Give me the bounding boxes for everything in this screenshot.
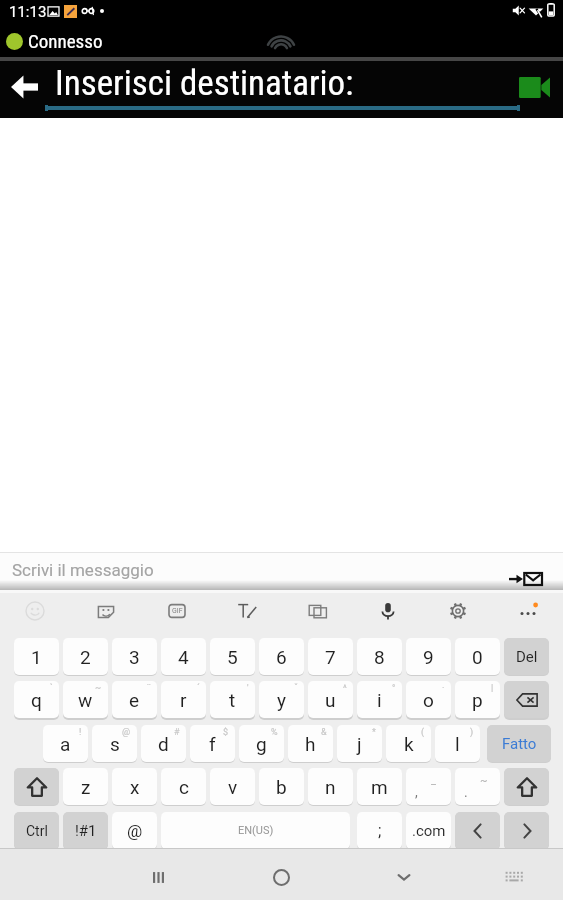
button[interactable]: Invia bbox=[503, 556, 551, 592]
staticText: 0 bbox=[472, 646, 483, 668]
button[interactable]: Indietro bbox=[0, 65, 48, 113]
button[interactable]: b bbox=[259, 768, 304, 805]
button[interactable] bbox=[455, 812, 500, 849]
staticText: ) bbox=[470, 727, 474, 738]
staticText: 11:13 bbox=[9, 3, 47, 21]
staticText: ' bbox=[247, 683, 249, 694]
button[interactable]: 8 bbox=[357, 638, 402, 675]
button[interactable]: y bbox=[259, 681, 304, 718]
button[interactable]: l bbox=[435, 725, 480, 762]
button[interactable]: 2 bbox=[63, 638, 108, 675]
button[interactable]: i bbox=[357, 681, 402, 718]
button[interactable]: Ctrl bbox=[14, 812, 59, 849]
staticText: t bbox=[229, 689, 236, 711]
staticText: ( bbox=[421, 727, 425, 738]
button[interactable]: e bbox=[112, 681, 157, 718]
staticText: · bbox=[442, 683, 445, 694]
button[interactable]: d bbox=[141, 725, 186, 762]
button[interactable]: n bbox=[308, 768, 353, 805]
staticText: ^ bbox=[343, 683, 347, 694]
button[interactable]: Del bbox=[504, 638, 549, 675]
staticText: | bbox=[491, 683, 494, 694]
staticText: 6 bbox=[276, 646, 287, 668]
button[interactable]: v bbox=[210, 768, 255, 805]
staticText: Fatto bbox=[502, 735, 537, 753]
button[interactable]: Appunti bbox=[300, 593, 336, 629]
button[interactable]: k bbox=[386, 725, 431, 762]
button[interactable]: 7 bbox=[308, 638, 353, 675]
button[interactable]: Voce bbox=[370, 593, 406, 629]
button[interactable]: f bbox=[190, 725, 235, 762]
staticText: 3 bbox=[129, 646, 140, 668]
button[interactable]: EN(US) bbox=[161, 812, 350, 849]
button[interactable]: 3 bbox=[112, 638, 157, 675]
button[interactable]: p bbox=[455, 681, 500, 718]
button[interactable] bbox=[14, 768, 59, 805]
button[interactable]: Inserisci destinatario: bbox=[45, 61, 520, 118]
staticText: 2 bbox=[80, 646, 91, 668]
button[interactable]: z bbox=[63, 768, 108, 805]
button[interactable]: j bbox=[337, 725, 382, 762]
staticText: p bbox=[472, 689, 483, 711]
button[interactable]: Chiudi tastiera bbox=[381, 854, 427, 900]
button[interactable]: Altro bbox=[510, 593, 546, 629]
staticText: .com bbox=[412, 822, 446, 840]
staticText: $ bbox=[223, 727, 229, 738]
button[interactable]: 4 bbox=[161, 638, 206, 675]
button[interactable]: , bbox=[406, 768, 451, 805]
button[interactable]: o bbox=[406, 681, 451, 718]
staticText: c bbox=[179, 776, 189, 798]
button[interactable]: w bbox=[63, 681, 108, 718]
staticText: @ bbox=[127, 821, 143, 841]
button[interactable]: . bbox=[455, 768, 500, 805]
button[interactable]: 1 bbox=[14, 638, 59, 675]
staticText: Del bbox=[516, 648, 538, 666]
button[interactable]: 0 bbox=[455, 638, 500, 675]
button[interactable]: u bbox=[308, 681, 353, 718]
button[interactable]: Emoji bbox=[17, 593, 53, 629]
button[interactable] bbox=[504, 768, 549, 805]
staticText: 8 bbox=[374, 646, 385, 668]
button[interactable]: ; bbox=[357, 812, 402, 849]
button[interactable]: Home bbox=[258, 854, 304, 900]
staticText: l bbox=[455, 733, 460, 755]
button[interactable] bbox=[504, 681, 549, 718]
button[interactable]: App recenti bbox=[135, 854, 181, 900]
button[interactable]: 5 bbox=[210, 638, 255, 675]
staticText: w bbox=[78, 689, 93, 711]
button[interactable]: a bbox=[43, 725, 88, 762]
button[interactable]: Impostazioni bbox=[440, 593, 476, 629]
button[interactable]: 6 bbox=[259, 638, 304, 675]
staticText: ~ bbox=[95, 683, 102, 694]
staticText: 5 bbox=[227, 646, 238, 668]
button[interactable]: c bbox=[161, 768, 206, 805]
button[interactable]: .com bbox=[406, 812, 451, 849]
button[interactable]: 9 bbox=[406, 638, 451, 675]
button[interactable]: @ bbox=[112, 812, 157, 849]
button[interactable]: m bbox=[357, 768, 402, 805]
button[interactable]: Fatto bbox=[487, 725, 551, 762]
staticText: & bbox=[321, 727, 327, 738]
button[interactable]: Sticker bbox=[88, 593, 124, 629]
button[interactable]: g bbox=[239, 725, 284, 762]
button[interactable]: q bbox=[14, 681, 59, 718]
button[interactable]: Tastiera bbox=[491, 854, 537, 900]
button[interactable]: h bbox=[288, 725, 333, 762]
staticText: ` bbox=[50, 683, 53, 694]
button[interactable]: GIF bbox=[159, 593, 195, 629]
staticText: k bbox=[404, 733, 414, 755]
button[interactable]: x bbox=[112, 768, 157, 805]
staticText: y bbox=[277, 689, 286, 711]
button[interactable]: t bbox=[210, 681, 255, 718]
button[interactable]: r bbox=[161, 681, 206, 718]
button[interactable] bbox=[504, 812, 549, 849]
button[interactable]: !#1 bbox=[63, 812, 108, 849]
staticText: @ bbox=[122, 727, 131, 738]
staticText: x bbox=[130, 776, 140, 798]
staticText: v bbox=[228, 776, 238, 798]
staticText: ¨ bbox=[147, 683, 151, 694]
button[interactable]: Videochiamata bbox=[508, 61, 558, 118]
staticText: ° bbox=[392, 683, 396, 694]
button[interactable]: s bbox=[92, 725, 137, 762]
button[interactable]: Scrittura bbox=[229, 593, 265, 629]
